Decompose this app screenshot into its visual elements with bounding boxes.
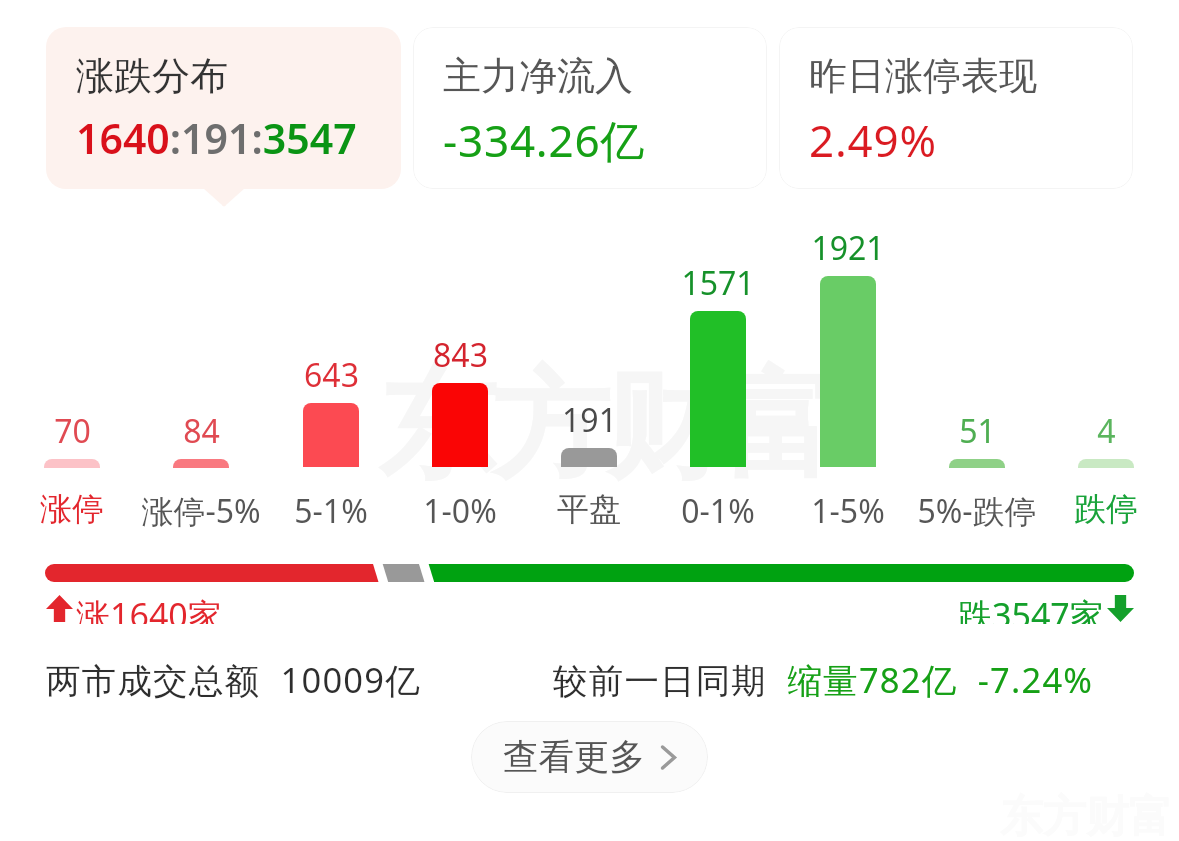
staticText: 较前一日同期 缩量782亿 -7.24%: [553, 656, 1094, 703]
staticText: 两市成交总额 10009亿: [46, 656, 421, 703]
staticText: 昨日涨停表现: [809, 52, 1037, 100]
staticText: 5%-跌停: [917, 489, 1037, 533]
staticText: 5-1%: [294, 489, 368, 533]
staticText: 70: [54, 409, 91, 453]
staticText: 4: [1097, 409, 1116, 453]
staticText: 191: [562, 398, 617, 442]
staticText: -334.26亿: [443, 110, 646, 170]
staticText: 查看更多: [503, 735, 645, 780]
button[interactable]: 涨跌分布: [46, 27, 401, 189]
button[interactable]: 昨日涨停表现: [779, 27, 1133, 189]
staticText: 东方财富: [380, 352, 836, 501]
button[interactable]: 查看更多: [471, 721, 708, 793]
staticText: 涨停-5%: [141, 489, 261, 533]
staticText: 51: [959, 409, 996, 453]
button[interactable]: 主力净流入: [413, 27, 767, 189]
staticText: 643: [304, 353, 359, 397]
staticText: 0-1%: [681, 489, 755, 533]
staticText: 跌3547家: [958, 592, 1104, 624]
staticText: 主力净流入: [443, 52, 633, 100]
staticText: 1-5%: [811, 489, 885, 533]
staticText: 跌停: [1074, 489, 1138, 529]
staticText: 1-0%: [423, 489, 497, 533]
staticText: 1640:191:3547: [76, 110, 357, 166]
staticText: 涨1640家: [76, 592, 222, 624]
staticText: 平盘: [557, 489, 621, 529]
staticText: 843: [433, 333, 488, 377]
staticText: 涨跌分布: [76, 52, 228, 100]
staticText: 1571: [681, 261, 755, 305]
staticText: 1921: [811, 226, 885, 270]
staticText: 84: [183, 409, 220, 453]
staticText: 涨停: [40, 489, 104, 529]
staticText: 2.49%: [809, 110, 937, 170]
